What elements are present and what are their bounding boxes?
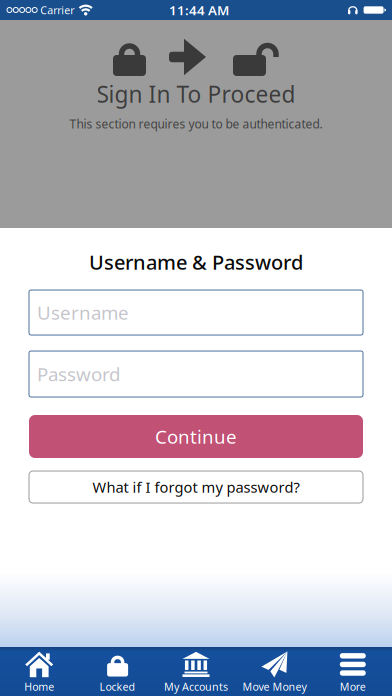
staticText: Username & Password	[89, 249, 303, 275]
staticText: Username	[37, 300, 129, 325]
staticText: Sign In To Proceed	[96, 79, 295, 109]
staticText: Home	[24, 679, 54, 694]
staticText: This section requires you to be authenti…	[69, 116, 322, 132]
button[interactable]: Continue	[29, 415, 363, 458]
staticText: 11:44 AM	[169, 1, 229, 19]
button[interactable]: Move Money	[235, 649, 314, 694]
staticText: What if I forgot my password?	[92, 477, 299, 497]
button[interactable]: Locked	[78, 649, 157, 694]
staticText: Locked	[100, 679, 136, 694]
button[interactable]: Password	[29, 351, 363, 397]
button[interactable]: What if I forgot my password?	[29, 471, 363, 503]
button[interactable]: Home	[0, 649, 78, 694]
button[interactable]: My Accounts	[157, 649, 235, 694]
button[interactable]: More	[314, 649, 392, 694]
staticText: Password	[37, 362, 120, 386]
staticText: Carrier	[40, 3, 74, 17]
staticText: More	[340, 679, 366, 694]
staticText: Move Money	[242, 679, 306, 694]
staticText: My Accounts	[164, 679, 228, 694]
button[interactable]: Username	[29, 290, 363, 335]
staticText: Continue	[155, 424, 237, 449]
